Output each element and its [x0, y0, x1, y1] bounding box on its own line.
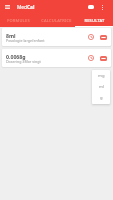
button[interactable]: RESULTAT [75, 14, 113, 27]
staticText: 0.0068g [6, 53, 26, 60]
staticText: MedCal [17, 4, 35, 11]
staticText: FORMULES [7, 18, 30, 23]
button[interactable]: ml [92, 81, 110, 92]
button[interactable]: 0.0068g [2, 49, 111, 67]
staticText: RESULTAT [84, 18, 105, 23]
staticText: g [100, 95, 103, 101]
staticText: CALCULATRICE [41, 18, 72, 23]
staticText: Dosering 3Mor vingt [6, 59, 41, 64]
button[interactable]: CALCULATRICE [37, 14, 75, 27]
button[interactable]: Info [85, 52, 97, 64]
button[interactable]: g [92, 92, 110, 103]
button[interactable]: FORMULES [0, 14, 37, 27]
button[interactable]: Change unit [97, 31, 109, 43]
staticText: mg [98, 73, 105, 79]
button[interactable]: 8ml [2, 28, 111, 46]
button[interactable]: Open navigation menu [0, 0, 14, 14]
button[interactable]: mg [92, 70, 110, 81]
button[interactable]: More options [97, 2, 108, 13]
staticText: ml [99, 84, 104, 90]
staticText: Posologie large/enfant [6, 38, 45, 43]
button[interactable]: Info [85, 31, 97, 43]
staticText: 8ml [6, 32, 16, 39]
button[interactable]: Change unit [97, 52, 109, 64]
button[interactable]: Select language [85, 1, 97, 13]
